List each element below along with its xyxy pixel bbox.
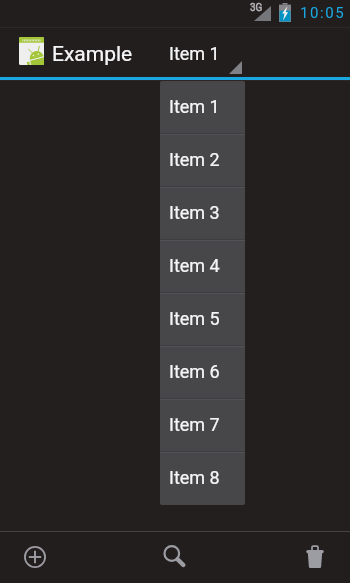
staticText: 3G <box>250 2 263 14</box>
staticText: Item 8 <box>169 467 220 488</box>
button[interactable]: Item 6 <box>160 346 245 399</box>
button[interactable]: Item 5 <box>160 293 245 346</box>
staticText: Example <box>52 42 133 67</box>
staticText: Item 1 <box>169 96 220 117</box>
staticText: Item 4 <box>169 255 220 276</box>
staticText: Item 1 <box>169 43 220 64</box>
staticText: Item 7 <box>169 414 220 435</box>
button[interactable]: Item 7 <box>160 399 245 452</box>
button[interactable]: Search <box>151 533 199 581</box>
button[interactable]: Item 3 <box>160 187 245 240</box>
staticText: 10:05 <box>300 4 346 22</box>
staticText: Item 3 <box>169 202 220 223</box>
button[interactable]: Item 2 <box>160 134 245 187</box>
button[interactable]: Delete <box>291 533 339 581</box>
staticText: Item 6 <box>169 361 220 382</box>
button[interactable]: Add <box>11 533 59 581</box>
staticText: Item 2 <box>169 149 220 170</box>
button[interactable]: Example <box>0 37 141 65</box>
button[interactable]: Item 1 <box>160 24 245 77</box>
button[interactable]: Item 1 <box>160 81 245 134</box>
button[interactable]: Item 4 <box>160 240 245 293</box>
staticText: Item 5 <box>169 308 220 329</box>
button[interactable]: Item 8 <box>160 452 245 505</box>
